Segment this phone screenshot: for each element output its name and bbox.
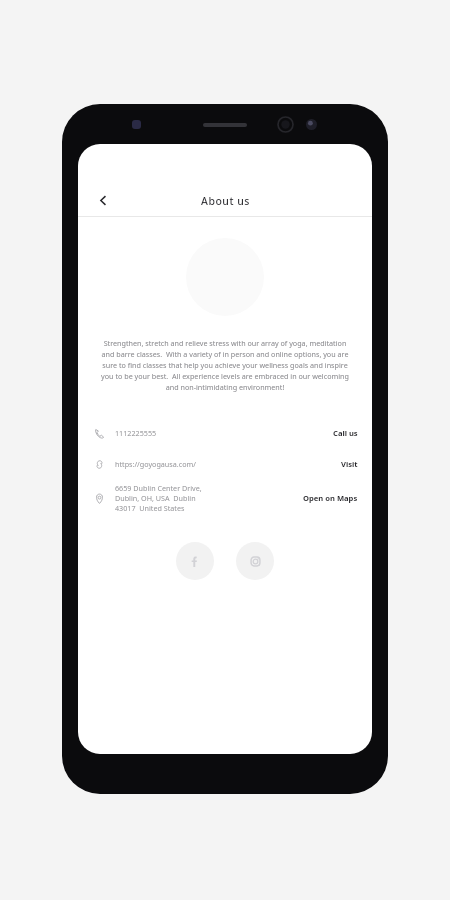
staticText: Open on Maps xyxy=(303,493,358,503)
staticText: 6659 Dublin Center Drive, xyxy=(115,483,202,493)
staticText: Dublin, OH, USA Dublin xyxy=(115,493,196,503)
staticText: Visit xyxy=(341,459,358,469)
staticText: 43017 United States xyxy=(115,503,185,513)
staticText: https://goyogausa.com/ xyxy=(115,459,196,469)
button[interactable]: Back xyxy=(86,183,120,217)
button[interactable]: 1112225555 xyxy=(78,420,372,446)
staticText: 1112225555 xyxy=(115,428,157,438)
button[interactable]: Instagram xyxy=(236,542,274,580)
button[interactable]: Facebook xyxy=(176,542,214,580)
staticText: About us xyxy=(201,194,250,208)
button[interactable]: https://goyogausa.com/ xyxy=(78,451,372,477)
staticText: Strengthen, stretch and relieve stress w… xyxy=(98,338,352,392)
button[interactable]: 6659 Dublin Center Drive, xyxy=(78,478,372,518)
staticText: Call us xyxy=(333,428,358,438)
